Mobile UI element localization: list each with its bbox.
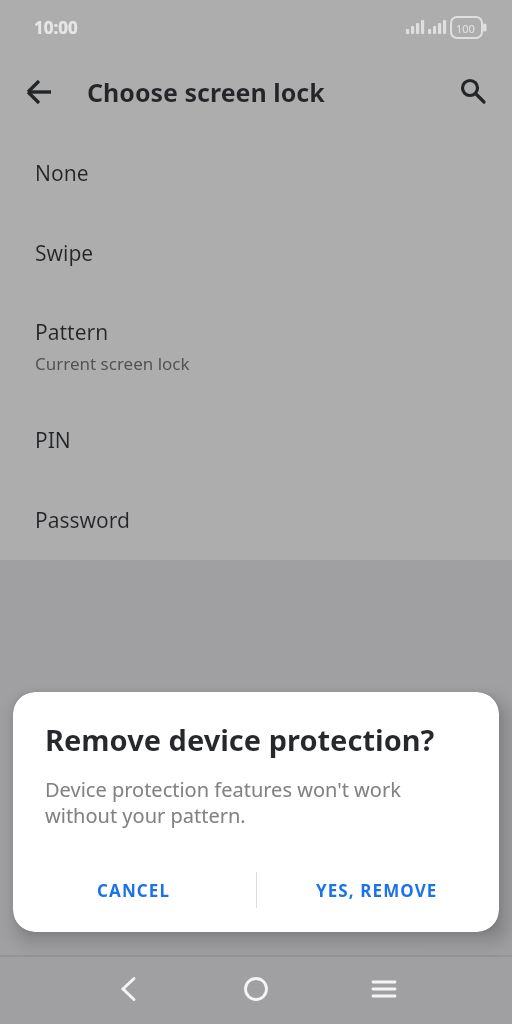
button[interactable]: Pattern [0,293,512,400]
staticText: 10:00 [34,16,78,39]
staticText: Password [35,506,130,535]
staticText: YES, REMOVE [316,879,438,902]
button[interactable]: None [0,133,512,213]
staticText: Pattern [35,318,109,347]
button[interactable] [104,965,152,1013]
staticText: PIN [35,426,71,455]
staticText: Remove device protection? [45,720,435,759]
button[interactable] [451,72,491,112]
staticText: Swipe [35,239,94,268]
staticText: 100 [456,21,475,36]
button[interactable]: CANCEL [74,870,194,910]
staticText: None [35,159,89,188]
button[interactable]: Swipe [0,213,512,293]
button[interactable]: PIN [0,400,512,480]
button[interactable]: Password [0,480,512,560]
staticText: Current screen lock [35,352,190,375]
staticText: CANCEL [97,879,171,902]
button[interactable] [20,72,60,112]
button[interactable] [360,965,408,1013]
button[interactable] [232,965,280,1013]
staticText: Device protection features won't work wi… [45,776,401,829]
button[interactable]: YES, REMOVE [302,870,452,910]
staticText: Choose screen lock [87,75,325,109]
